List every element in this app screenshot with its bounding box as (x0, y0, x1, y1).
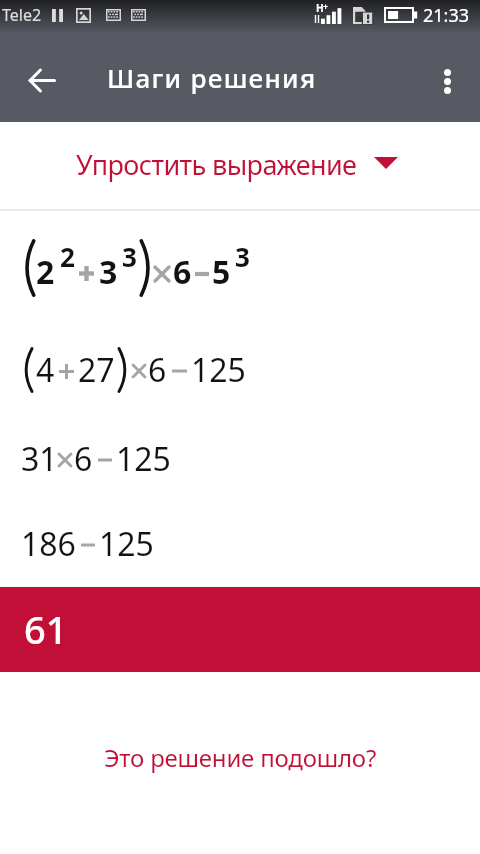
staticText: Упростить выражение (76, 146, 357, 183)
staticText: 27 (78, 348, 115, 392)
staticText: 61 (24, 603, 68, 655)
staticText: 6 (148, 348, 167, 392)
staticText: 186 (21, 522, 76, 566)
staticText: 4 (36, 348, 55, 392)
staticText: 6 (173, 250, 192, 294)
button[interactable]: More options (423, 57, 471, 105)
staticText: 31 (21, 437, 58, 481)
staticText: 3 (122, 239, 137, 274)
button[interactable]: Back (18, 56, 66, 104)
staticText: 21:33 (423, 3, 470, 28)
staticText: 3 (99, 250, 118, 294)
staticText: Это решение подошло? (104, 741, 377, 774)
staticText: 5 (212, 250, 231, 294)
staticText: 3 (235, 239, 250, 274)
button[interactable]: Это решение подошло? (0, 725, 480, 785)
staticText: Tele2 (2, 4, 42, 26)
staticText: + (323, 0, 329, 12)
button[interactable]: Упростить выражение (0, 122, 480, 209)
staticText: H (316, 1, 324, 15)
staticText: 125 (99, 522, 154, 566)
staticText: 125 (191, 348, 246, 392)
staticText: 6 (74, 437, 93, 481)
staticText: 2 (60, 239, 75, 274)
staticText: Шаги решения (107, 60, 317, 95)
staticText: 125 (116, 437, 171, 481)
staticText: 2 (36, 250, 55, 294)
